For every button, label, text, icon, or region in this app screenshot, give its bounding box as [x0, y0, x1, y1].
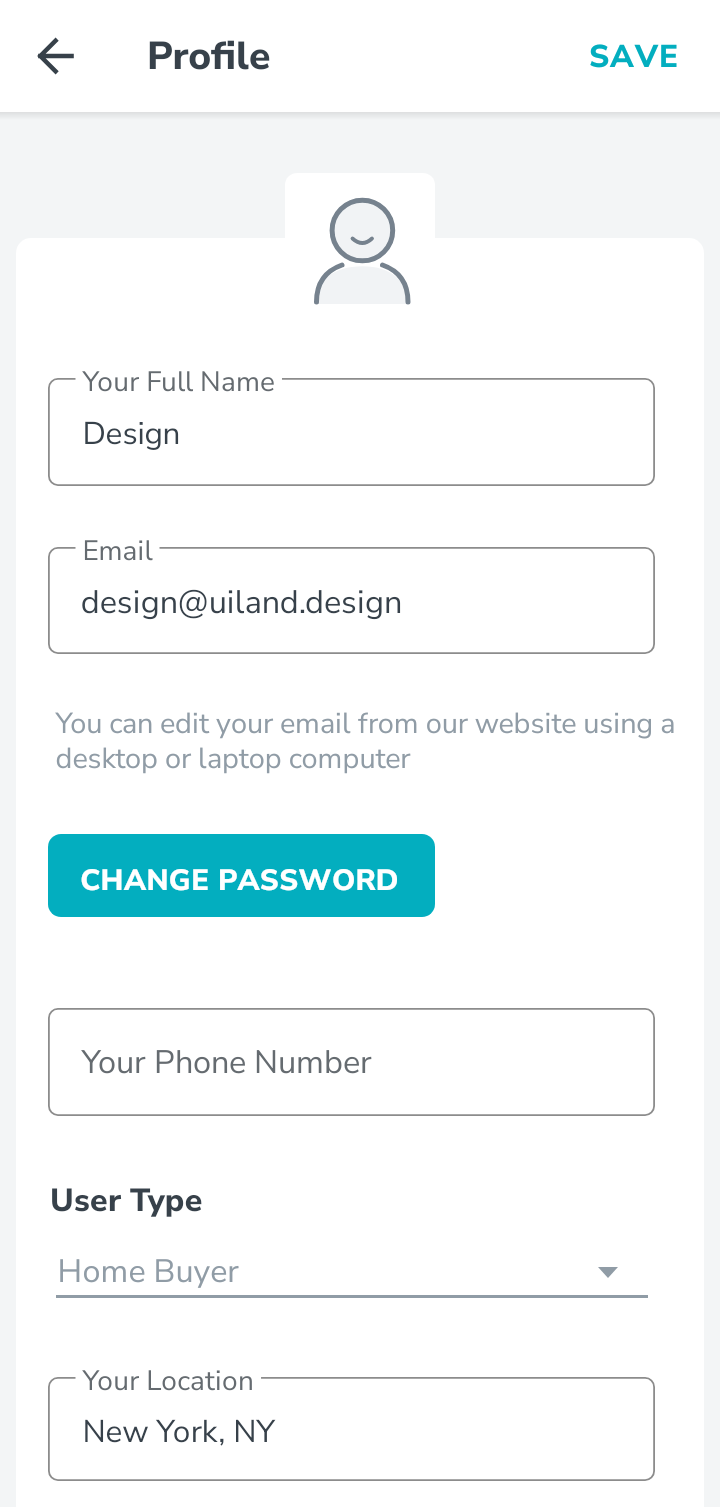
button[interactable]: Back — [24, 24, 88, 88]
button[interactable] — [48, 834, 435, 917]
button[interactable] — [578, 20, 690, 92]
button[interactable]: Profile photo — [285, 173, 435, 323]
